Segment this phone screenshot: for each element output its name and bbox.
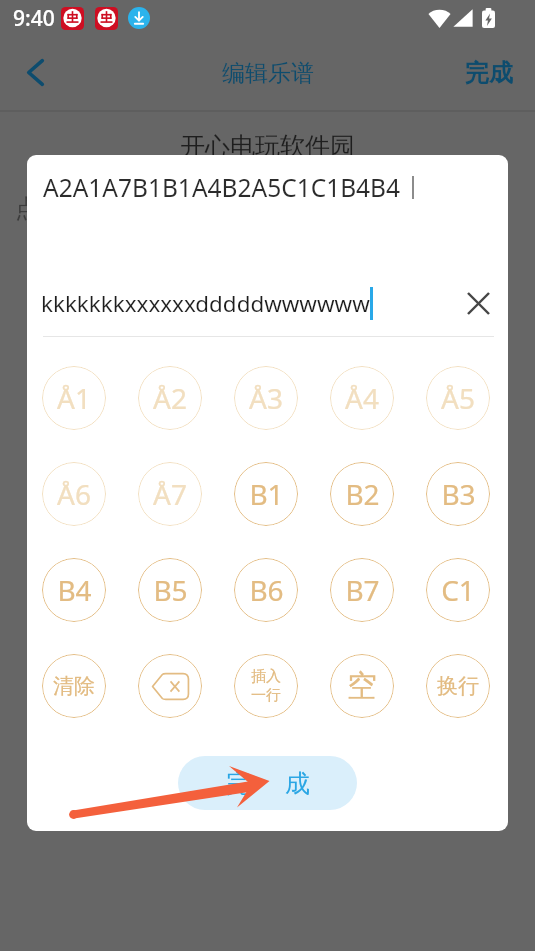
button[interactable]: B6	[234, 558, 298, 622]
staticText: B5	[153, 571, 188, 609]
staticText: Å5	[441, 379, 475, 417]
button[interactable]: 清除	[42, 654, 106, 718]
button[interactable]: Å7	[138, 462, 202, 526]
button[interactable]: Å5	[426, 366, 490, 430]
staticText: 点	[15, 193, 40, 224]
staticText: 成	[285, 768, 310, 799]
staticText: 完成	[465, 58, 513, 88]
staticText: B7	[345, 571, 380, 609]
button[interactable]: C1	[426, 558, 490, 622]
staticText: B3	[441, 475, 476, 513]
button[interactable]: B4	[42, 558, 106, 622]
staticText: 空	[347, 667, 377, 705]
button[interactable]: Å3	[234, 366, 298, 430]
button[interactable]: 插入	[234, 654, 298, 718]
staticText: Å2	[153, 379, 187, 417]
staticText: 9:40	[13, 4, 55, 33]
staticText: B2	[345, 475, 380, 513]
button[interactable]: B2	[330, 462, 394, 526]
staticText: Å3	[249, 379, 283, 417]
button[interactable]: 完	[178, 756, 357, 810]
staticText: Å7	[153, 475, 187, 513]
staticText: B6	[249, 571, 284, 609]
button[interactable]: B1	[234, 462, 298, 526]
staticText: 清除	[53, 673, 95, 699]
staticText: 编辑乐谱	[222, 59, 314, 88]
staticText: 换行	[437, 673, 479, 699]
staticText: B4	[57, 571, 92, 609]
staticText: 完	[226, 768, 251, 799]
button[interactable]: B3	[426, 462, 490, 526]
button[interactable]: Back	[7, 44, 63, 100]
button[interactable]: Å2	[138, 366, 202, 430]
button[interactable]: Å1	[42, 366, 106, 430]
button[interactable]: B5	[138, 558, 202, 622]
button[interactable]: 完成	[452, 45, 526, 101]
button[interactable]: 换行	[426, 654, 490, 718]
staticText: C1	[441, 571, 475, 609]
button[interactable]: 空	[330, 654, 394, 718]
button[interactable]: B7	[330, 558, 394, 622]
staticText: 一行	[251, 686, 281, 705]
button[interactable]: Å4	[330, 366, 394, 430]
button[interactable]: Backspace	[138, 654, 202, 718]
staticText: 开心电玩软件园	[180, 131, 355, 162]
button[interactable]: Å6	[42, 462, 106, 526]
staticText: Å6	[57, 475, 91, 513]
staticText: A2A1A7B1B1A4B2A5C1C1B4B4	[43, 171, 401, 204]
button[interactable]: Clear text	[457, 282, 499, 324]
staticText: Å1	[57, 379, 91, 417]
staticText: B1	[249, 475, 284, 513]
staticText: 插入	[251, 667, 281, 686]
staticText: Å4	[345, 379, 379, 417]
staticText: kkkkkkkxxxxxxdddddwwwwww	[41, 288, 370, 319]
